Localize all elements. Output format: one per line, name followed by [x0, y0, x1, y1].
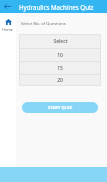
staticText: Home — [2, 27, 14, 32]
staticText: Select — [53, 38, 68, 45]
button[interactable]: Select — [19, 34, 101, 48]
staticText: 10 — [57, 52, 63, 59]
staticText: START QUIZ — [48, 105, 73, 111]
staticText: 20 — [57, 77, 63, 84]
staticText: Select No. of Questions — [21, 21, 66, 27]
button[interactable]: 20 — [19, 75, 101, 86]
button[interactable]: 15 — [19, 62, 101, 74]
button[interactable]: START QUIZ — [22, 102, 98, 113]
button[interactable]: Home — [0, 19, 16, 32]
staticText: Hydraulics Machines Quiz — [19, 3, 94, 11]
button[interactable]: Back — [0, 0, 14, 13]
staticText: 15 — [57, 65, 63, 72]
button[interactable]: 10 — [19, 49, 101, 61]
